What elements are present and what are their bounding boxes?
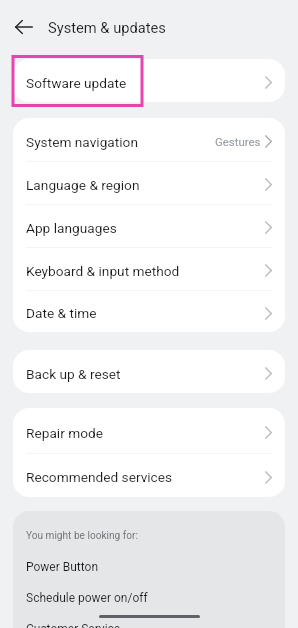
staticText: App languages [26,220,117,236]
button[interactable]: Date & time [13,290,285,332]
button[interactable]: Back up & reset [13,350,285,393]
staticText: Power Button [26,560,99,574]
button[interactable]: System navigation [13,118,285,161]
staticText: Keyboard & input method [26,263,180,279]
staticText: Back up & reset [26,366,121,382]
button[interactable]: Customer Service [13,612,285,628]
button[interactable]: Software update [13,59,285,102]
button[interactable]: Language & region [13,161,285,204]
button[interactable]: Schedule power on/off [13,581,285,612]
button[interactable]: Keyboard & input method [13,247,285,290]
staticText: Software update [26,75,127,91]
button[interactable]: Recommended services [13,453,285,497]
staticText: Recommended services [26,469,173,485]
button[interactable]: Power Button [13,550,285,581]
staticText: Customer Service [26,622,121,628]
button[interactable]: Back [8,11,40,43]
staticText: System navigation [26,134,138,150]
staticText: Language & region [26,177,140,193]
button[interactable]: Repair mode [13,408,285,453]
staticText: Gestures [215,135,261,148]
staticText: Repair mode [26,425,103,441]
staticText: System & updates [48,19,166,36]
staticText: Schedule power on/off [26,591,148,605]
staticText: You might be looking for: [26,530,138,542]
button[interactable]: App languages [13,204,285,247]
staticText: Date & time [26,305,97,321]
